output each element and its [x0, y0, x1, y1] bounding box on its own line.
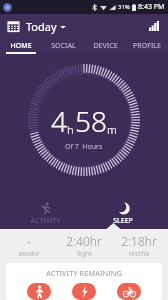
- button[interactable]: SLEEP: [97, 201, 149, 227]
- staticText: Of 7 Hours: [65, 142, 103, 152]
- staticText: SLEEP: [113, 216, 133, 226]
- staticText: 2:40hr: [66, 233, 102, 249]
- button[interactable]: Today: [26, 19, 66, 34]
- staticText: awake: [18, 249, 40, 259]
- button[interactable]: Calendar: [5, 18, 21, 34]
- staticText: 4: [51, 102, 67, 140]
- button[interactable]: Stats: [146, 18, 162, 34]
- button[interactable]: Active minutes: [72, 283, 96, 300]
- staticText: restful: [128, 249, 150, 259]
- staticText: 2:18hr: [121, 233, 157, 249]
- staticText: m: [107, 122, 117, 137]
- button[interactable]: ACTIVITY: [19, 201, 71, 227]
- button[interactable]: Calories: [117, 283, 141, 300]
- staticText: Today: [26, 19, 57, 34]
- staticText: SOCIAL: [51, 41, 76, 51]
- staticText: HOME: [10, 41, 32, 51]
- button[interactable]: ACTIVITY REMAINING: [6, 263, 162, 300]
- button[interactable]: -: [3, 233, 55, 259]
- staticText: 58: [75, 102, 107, 140]
- staticText: PROFILE: [133, 41, 161, 51]
- button[interactable]: HOME: [0, 38, 42, 54]
- button[interactable]: DEVICE: [84, 38, 126, 54]
- staticText: 8:43 PM: [138, 2, 165, 12]
- button[interactable]: 2:40hr: [58, 233, 110, 259]
- staticText: h: [67, 122, 74, 137]
- staticText: 31%: [118, 3, 130, 11]
- button[interactable]: 2:18hr: [113, 233, 165, 259]
- staticText: -: [27, 233, 31, 249]
- staticText: light: [77, 249, 92, 259]
- staticText: ACTIVITY REMAINING: [46, 268, 122, 278]
- staticText: DEVICE: [93, 41, 118, 51]
- button[interactable]: SOCIAL: [42, 38, 84, 54]
- button[interactable]: Steps: [27, 283, 51, 300]
- button[interactable]: PROFILE: [126, 38, 168, 54]
- staticText: ACTIVITY: [30, 216, 61, 226]
